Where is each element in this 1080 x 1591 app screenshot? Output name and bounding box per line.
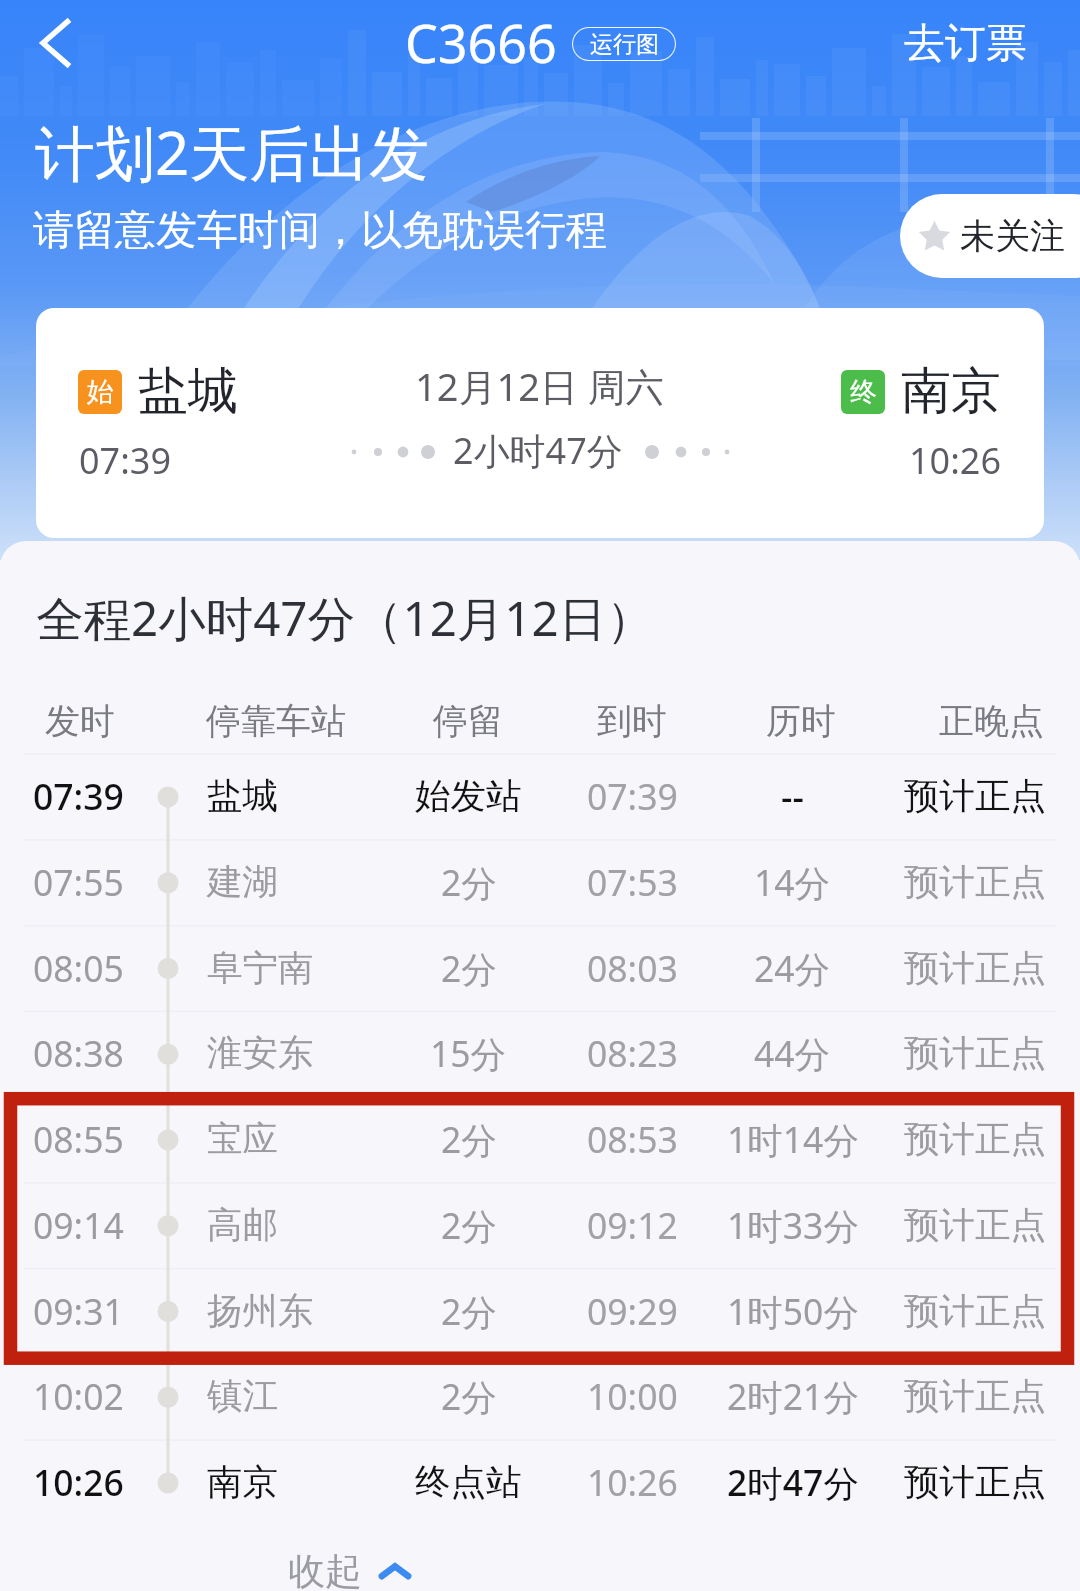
staticText: 08:03 — [587, 944, 678, 992]
staticText: 07:55 — [33, 858, 124, 906]
staticText: 2分 — [441, 1115, 497, 1163]
staticText: 1时50分 — [727, 1287, 859, 1335]
staticText: 08:23 — [587, 1029, 678, 1077]
staticText: 发时 — [45, 699, 115, 743]
staticText: 24分 — [754, 944, 831, 992]
staticText: 预计正点 — [904, 1460, 1046, 1505]
staticText: 历时 — [766, 699, 836, 743]
button[interactable]: 07:39 — [0, 754, 1080, 840]
staticText: 南京 — [207, 1460, 278, 1505]
staticText: 盐城 — [138, 360, 238, 423]
staticText: 09:14 — [33, 1201, 124, 1249]
button[interactable]: 08:38 — [0, 1011, 1080, 1097]
button[interactable]: 去订票 — [885, 4, 1046, 84]
staticText: 预计正点 — [904, 1031, 1046, 1076]
staticText: 2分 — [441, 1372, 497, 1420]
staticText: 08:05 — [33, 944, 124, 992]
staticText: 12月12日 周六 — [415, 360, 664, 412]
staticText: 10:02 — [33, 1372, 124, 1420]
staticText: 10:26 — [587, 1458, 678, 1506]
staticText: 07:39 — [33, 772, 124, 820]
button[interactable]: 未关注 — [900, 194, 1080, 278]
staticText: 预计正点 — [904, 1117, 1046, 1162]
staticText: 正晚点 — [939, 699, 1044, 743]
staticText: 停靠车站 — [206, 699, 346, 743]
staticText: 07:39 — [79, 436, 172, 485]
staticText: 2分 — [441, 1287, 497, 1335]
staticText: 阜宁南 — [207, 946, 314, 991]
staticText: 预计正点 — [904, 1289, 1046, 1334]
button[interactable]: 10:26 — [0, 1440, 1080, 1526]
button[interactable]: 09:14 — [0, 1183, 1080, 1269]
staticText: 终点站 — [415, 1460, 522, 1505]
staticText: 07:39 — [587, 772, 678, 820]
staticText: 停留 — [433, 699, 503, 743]
staticText: 始发站 — [415, 774, 522, 819]
staticText: 08:53 — [587, 1115, 678, 1163]
staticText: 09:29 — [587, 1287, 678, 1335]
staticText: 宝应 — [207, 1117, 278, 1162]
staticText: 预计正点 — [904, 1374, 1046, 1419]
button[interactable]: 08:05 — [0, 926, 1080, 1012]
staticText: 镇江 — [207, 1374, 278, 1419]
staticText: C3666 — [405, 7, 557, 78]
staticText: 1时33分 — [727, 1201, 859, 1249]
button[interactable]: 运行图 — [572, 27, 676, 61]
button[interactable] — [36, 308, 1044, 538]
staticText: 44分 — [754, 1029, 831, 1077]
staticText: 扬州东 — [207, 1289, 314, 1334]
staticText: 预计正点 — [904, 774, 1046, 819]
staticText: 10:00 — [587, 1372, 678, 1420]
button[interactable]: 收起 — [288, 1540, 468, 1591]
staticText: 10:26 — [33, 1458, 124, 1506]
staticText: 2分 — [441, 858, 497, 906]
staticText: 收起 — [288, 1548, 362, 1591]
staticText: 08:38 — [33, 1029, 124, 1077]
staticText: 2小时47分 — [453, 426, 623, 475]
staticText: 淮安东 — [207, 1031, 314, 1076]
staticText: 2分 — [441, 944, 497, 992]
staticText: 预计正点 — [904, 1203, 1046, 1248]
staticText: 2时21分 — [727, 1372, 859, 1420]
staticText: 终 — [850, 375, 877, 409]
staticText: 2分 — [441, 1201, 497, 1249]
staticText: 10:26 — [909, 436, 1002, 485]
button[interactable]: 07:55 — [0, 840, 1080, 926]
staticText: 请留意发车时间，以免耽误行程 — [33, 205, 607, 257]
staticText: 运行图 — [590, 30, 659, 59]
staticText: -- — [781, 772, 804, 820]
staticText: 高邮 — [207, 1203, 278, 1248]
staticText: 预计正点 — [904, 860, 1046, 905]
staticText: 到时 — [597, 699, 667, 743]
staticText: 07:53 — [587, 858, 678, 906]
staticText: 盐城 — [207, 774, 278, 819]
button[interactable]: 08:55 — [0, 1097, 1080, 1183]
staticText: 计划2天后出发 — [35, 111, 430, 193]
staticText: 始 — [87, 375, 114, 409]
staticText: 09:31 — [33, 1287, 124, 1335]
staticText: 14分 — [754, 858, 831, 906]
staticText: 未关注 — [960, 214, 1065, 258]
staticText: 15分 — [430, 1029, 507, 1077]
staticText: 全程2小时47分（12月12日） — [36, 585, 654, 650]
button[interactable]: 10:02 — [0, 1354, 1080, 1440]
staticText: 预计正点 — [904, 946, 1046, 991]
staticText: 1时14分 — [727, 1115, 859, 1163]
staticText: 09:12 — [587, 1201, 678, 1249]
staticText: 2时47分 — [727, 1458, 859, 1506]
staticText: 建湖 — [207, 860, 278, 905]
staticText: 南京 — [901, 360, 1001, 423]
button[interactable]: 09:31 — [0, 1269, 1080, 1355]
button[interactable]: Back — [0, 0, 112, 86]
staticText: 08:55 — [33, 1115, 124, 1163]
staticText: 去订票 — [904, 18, 1027, 70]
